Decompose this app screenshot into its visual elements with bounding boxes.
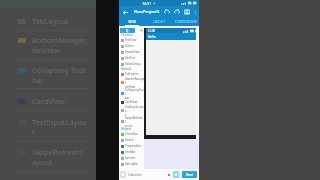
staticText: bar bbox=[32, 75, 44, 85]
button[interactable]: Preview layout bbox=[172, 171, 180, 178]
staticText: SwipeRefreshL bbox=[125, 116, 144, 124]
staticText: BottomNavigat bbox=[32, 35, 86, 45]
staticText: Next bbox=[186, 173, 193, 177]
button[interactable]: VIEW bbox=[119, 18, 145, 26]
staticText: TextView bbox=[125, 38, 137, 42]
button[interactable] bbox=[121, 172, 126, 177]
button[interactable]: Clear bbox=[139, 28, 143, 32]
button[interactable]: COMPONENTS bbox=[172, 18, 199, 26]
staticText: bar bbox=[125, 96, 130, 99]
staticText: CardView bbox=[125, 100, 138, 104]
staticText: ayout bbox=[32, 157, 52, 167]
staticText: TabLayout bbox=[32, 16, 69, 26]
button[interactable]: RadioGroup bbox=[119, 61, 144, 67]
staticText: Hello bbox=[148, 35, 156, 39]
button[interactable]: CardView bbox=[119, 99, 144, 105]
button[interactable]: RatingBar bbox=[119, 161, 144, 167]
button[interactable]: Redo bbox=[172, 7, 182, 17]
staticText: ionView bbox=[32, 45, 60, 55]
button[interactable]: BottomNavigat bbox=[119, 77, 144, 88]
staticText: TextInputLayou bbox=[125, 105, 144, 113]
staticText: NewProject3 bbox=[134, 9, 160, 15]
button[interactable]: Button bbox=[119, 43, 144, 49]
button[interactable]: EditText bbox=[119, 55, 144, 61]
staticText: Spinner bbox=[125, 156, 136, 160]
button[interactable]: Undo bbox=[162, 7, 172, 17]
staticText: LAYOUT bbox=[153, 20, 165, 24]
button[interactable]: ProgressBar bbox=[119, 143, 144, 149]
button[interactable]: More options bbox=[192, 7, 198, 17]
button[interactable]: CheckBox bbox=[119, 131, 144, 137]
button[interactable]: TextInputLayou bbox=[119, 105, 144, 116]
staticText: t bbox=[125, 113, 127, 116]
button[interactable]: Switch bbox=[119, 137, 144, 143]
staticText: Common bbox=[121, 33, 133, 37]
staticText: VIEW bbox=[128, 20, 136, 24]
button[interactable]: CollapsingTool bbox=[119, 88, 144, 99]
button[interactable]: SeekBar bbox=[119, 149, 144, 155]
button[interactable]: Q bbox=[120, 28, 135, 33]
staticText: ProgressBar bbox=[125, 144, 142, 148]
button[interactable]: TextView bbox=[119, 37, 144, 43]
staticText: ImageView bbox=[125, 50, 140, 54]
staticText: TextInputLayou bbox=[32, 117, 87, 127]
staticText: SwipeRefreshL bbox=[32, 147, 84, 157]
staticText: CardView bbox=[32, 96, 65, 106]
staticText: Q bbox=[126, 29, 129, 33]
staticText: SeekBar bbox=[125, 150, 136, 154]
staticText: Switch bbox=[125, 138, 134, 142]
button[interactable]: ImageView bbox=[119, 49, 144, 55]
staticText: Collapsing Tool bbox=[32, 65, 86, 75]
staticText: Widgets bbox=[121, 127, 131, 131]
button[interactable]: LAYOUT bbox=[145, 18, 172, 26]
staticText: t bbox=[32, 127, 35, 137]
button[interactable]: SwipeRefreshL bbox=[119, 116, 144, 127]
staticText: 14:31 bbox=[142, 1, 152, 6]
staticText: 12:00 bbox=[148, 29, 156, 33]
staticText: ionView bbox=[125, 85, 136, 88]
staticText: CheckBox bbox=[125, 132, 138, 136]
button[interactable]: Spinner bbox=[119, 155, 144, 161]
staticText: RadioGroup bbox=[125, 62, 141, 66]
staticText: CollapsingTool bbox=[125, 88, 144, 96]
button[interactable]: Next bbox=[182, 171, 197, 178]
button[interactable]: TabLayout bbox=[119, 71, 144, 77]
staticText: Subscribe bbox=[128, 173, 142, 177]
staticText: Material bbox=[121, 67, 132, 71]
button[interactable]: Back bbox=[121, 8, 130, 17]
staticText: RatingBar bbox=[125, 162, 139, 166]
staticText: EditText bbox=[125, 56, 136, 60]
staticText: TabLayout bbox=[125, 72, 139, 76]
staticText: COMPONENTS bbox=[175, 20, 197, 24]
staticText: BottomNavigat bbox=[125, 77, 144, 85]
staticText: Button bbox=[125, 44, 134, 48]
button[interactable]: Save bbox=[182, 7, 192, 17]
staticText: ayout bbox=[125, 124, 133, 127]
